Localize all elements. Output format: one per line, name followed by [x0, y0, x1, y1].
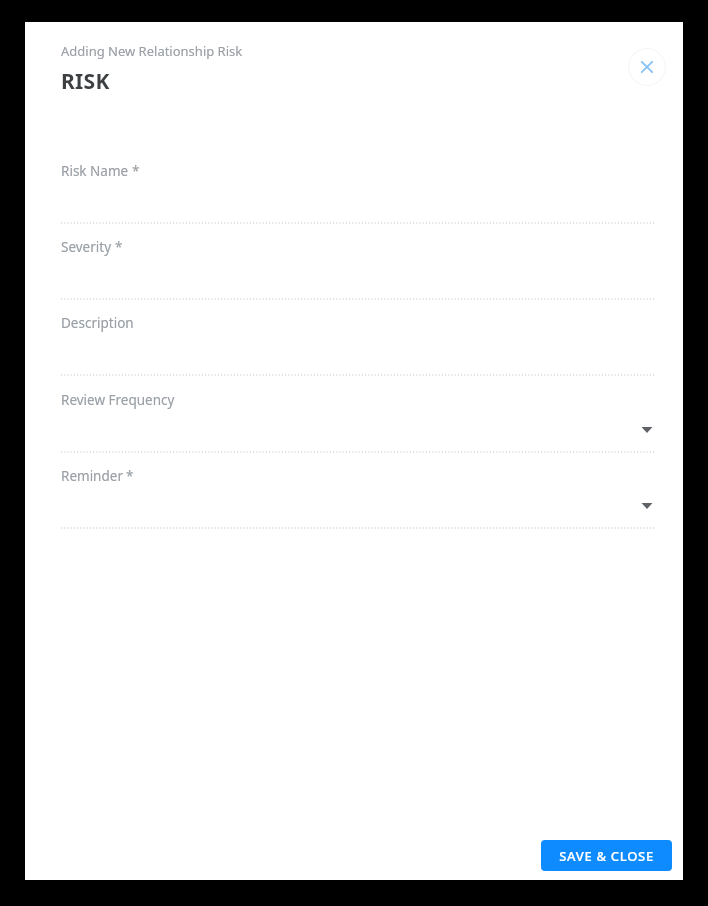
staticText: Risk Name — [61, 162, 129, 180]
staticText: * — [115, 238, 123, 256]
staticText: Description — [61, 314, 134, 332]
staticText: * — [126, 467, 134, 485]
button[interactable]: Severity — [61, 238, 654, 300]
button[interactable]: SAVE & CLOSE — [541, 840, 672, 871]
button[interactable]: Close — [628, 48, 666, 86]
button[interactable]: Risk Name — [61, 162, 654, 224]
staticText: RISK — [61, 67, 110, 96]
staticText: Adding New Relationship Risk — [61, 42, 243, 60]
staticText: SAVE & CLOSE — [559, 847, 654, 865]
staticText: Review Frequency — [61, 391, 175, 409]
other: Review Frequency dropdown — [640, 424, 654, 436]
button[interactable]: Reminder — [61, 467, 654, 529]
staticText: Reminder — [61, 467, 123, 485]
staticText: Severity — [61, 238, 112, 256]
button[interactable]: Description — [61, 314, 654, 376]
button[interactable]: Review Frequency — [61, 391, 654, 453]
other: Reminder dropdown — [640, 500, 654, 512]
staticText: * — [132, 162, 140, 180]
